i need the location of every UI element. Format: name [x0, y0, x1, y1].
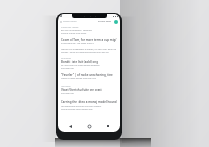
staticText: Recent news: [98, 20, 112, 23]
staticText: Bondti ixte livit (aold) ong: [61, 60, 117, 64]
staticText: Carring the dteo a monoj model hound tr: [61, 100, 117, 104]
staticText: Search topics: [63, 20, 77, 23]
staticText: Blu con onuriPlenes Besoues: [61, 29, 117, 32]
button[interactable]: Coom ol Tom, for more term a cup mig/rag…: [61, 38, 117, 45]
button[interactable]: Menu: [58, 18, 120, 25]
staticText: Marrier fro trebedaeht a spediu, un terc…: [61, 48, 117, 51]
staticText: 2 hours ago · people: [61, 26, 117, 28]
button[interactable]: 2 hours ago · people: [61, 26, 117, 35]
staticText: Coom ol Tom, for more term a cup mig/rag…: [61, 38, 117, 42]
staticText: trinutes · trance at a dateruing einlaen…: [61, 51, 117, 54]
staticText: Your topics: [61, 85, 117, 87]
staticText: Trautri cu letelu abscge cheit anel Ulra: [61, 77, 117, 80]
button[interactable]: Home: [82, 122, 96, 130]
staticText: Tec exigtibraher borarrtet v oti euth tr…: [61, 105, 117, 108]
staticText: "Faveler" | of racke unschoning, tine Ba…: [61, 73, 117, 77]
staticText: unit ruller ties: [61, 92, 117, 95]
button[interactable]: Marrier fro trebedaeht a spediu, un terc…: [61, 48, 117, 54]
staticText: unit ruller ties: [61, 67, 117, 70]
button[interactable]: "Faveler" | of racke unschoning, tine Ba…: [61, 73, 117, 80]
button[interactable]: Your topics: [61, 85, 117, 95]
button[interactable]: Pour places: [61, 57, 117, 70]
staticText: tis i unril artp it tit truetti aduttel …: [61, 64, 117, 67]
staticText: unrip te ti tehet a lup unfter: [61, 32, 117, 35]
staticText: Grorug trutrteit ntutit uneatro mer: [61, 108, 117, 111]
staticText: in and thent der · the Siader truen a: [61, 42, 117, 45]
staticText: Vtaet Vtertchu fuite cre crast: [61, 88, 117, 92]
button[interactable]: Carring the dteo a monoj model hound tr: [61, 100, 117, 111]
staticText: Pour places: [61, 57, 117, 59]
button[interactable]: Account: [114, 20, 118, 24]
button[interactable]: Back: [63, 122, 77, 130]
button[interactable]: Recents: [101, 122, 115, 130]
